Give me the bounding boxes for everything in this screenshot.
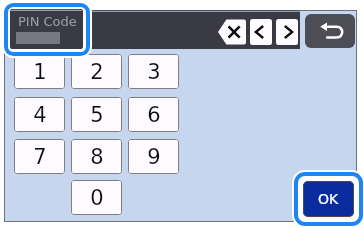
button[interactable]: 9 bbox=[128, 139, 179, 174]
button[interactable]: Undo bbox=[305, 14, 355, 48]
button[interactable]: 0 bbox=[71, 180, 122, 215]
staticText: 9 bbox=[147, 145, 161, 169]
staticText: 2 bbox=[90, 60, 104, 84]
button[interactable]: 6 bbox=[128, 97, 179, 132]
staticText: OK bbox=[318, 191, 339, 207]
button[interactable]: 5 bbox=[71, 97, 122, 132]
staticText: 7 bbox=[33, 145, 47, 169]
button[interactable]: Backspace bbox=[218, 19, 246, 45]
button[interactable]: 4 bbox=[14, 97, 65, 132]
button[interactable]: 3 bbox=[128, 54, 179, 89]
button[interactable]: 7 bbox=[14, 139, 65, 174]
staticText: 0 bbox=[90, 186, 104, 210]
button[interactable]: 1 bbox=[14, 54, 65, 89]
button[interactable]: Move cursor right bbox=[276, 19, 298, 45]
staticText: PIN Code bbox=[18, 14, 77, 29]
button[interactable]: OK bbox=[303, 181, 354, 217]
staticText: 3 bbox=[147, 60, 161, 84]
staticText: 4 bbox=[33, 103, 47, 127]
button[interactable]: Move cursor left bbox=[250, 19, 272, 45]
staticText: 5 bbox=[90, 103, 104, 127]
button[interactable]: 2 bbox=[71, 54, 122, 89]
staticText: 1 bbox=[33, 60, 47, 84]
staticText: 6 bbox=[147, 103, 161, 127]
button[interactable]: 8 bbox=[71, 139, 122, 174]
staticText: 8 bbox=[90, 145, 104, 169]
